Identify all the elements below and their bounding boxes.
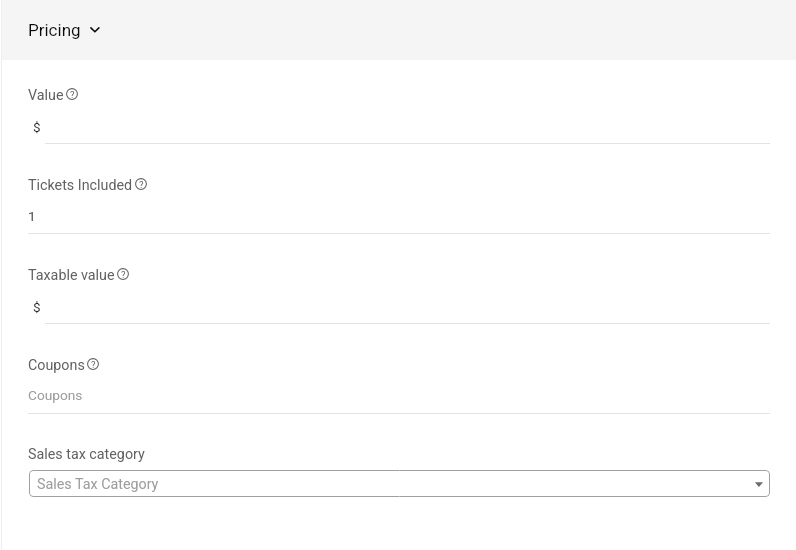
button[interactable]: Pricing bbox=[2, 0, 796, 60]
staticText: $ bbox=[33, 299, 41, 315]
button[interactable]: Help bbox=[117, 268, 129, 280]
staticText: 1 bbox=[28, 208, 36, 224]
staticText: Pricing bbox=[28, 20, 81, 40]
button[interactable]: Coupons bbox=[28, 382, 770, 414]
staticText: Value bbox=[28, 87, 64, 104]
staticText: ? bbox=[139, 179, 144, 190]
button[interactable]: Sales Tax Category bbox=[29, 470, 770, 497]
button[interactable]: Tickets included bbox=[28, 202, 770, 234]
button[interactable]: Help bbox=[87, 358, 99, 370]
staticText: ? bbox=[121, 269, 126, 280]
button[interactable]: Help bbox=[66, 88, 78, 100]
staticText: Taxable value bbox=[28, 267, 115, 284]
staticText: Sales tax category bbox=[28, 446, 145, 463]
staticText: ? bbox=[91, 359, 96, 370]
button[interactable]: Value amount bbox=[28, 112, 770, 144]
staticText: Coupons bbox=[28, 357, 85, 374]
button[interactable]: Taxable value amount bbox=[28, 292, 770, 324]
staticText: ? bbox=[70, 89, 75, 100]
staticText: Coupons bbox=[28, 387, 83, 403]
staticText: Tickets Included bbox=[28, 177, 133, 194]
staticText: Sales Tax Category bbox=[37, 476, 159, 493]
button[interactable]: Help bbox=[135, 178, 147, 190]
staticText: $ bbox=[33, 119, 41, 135]
